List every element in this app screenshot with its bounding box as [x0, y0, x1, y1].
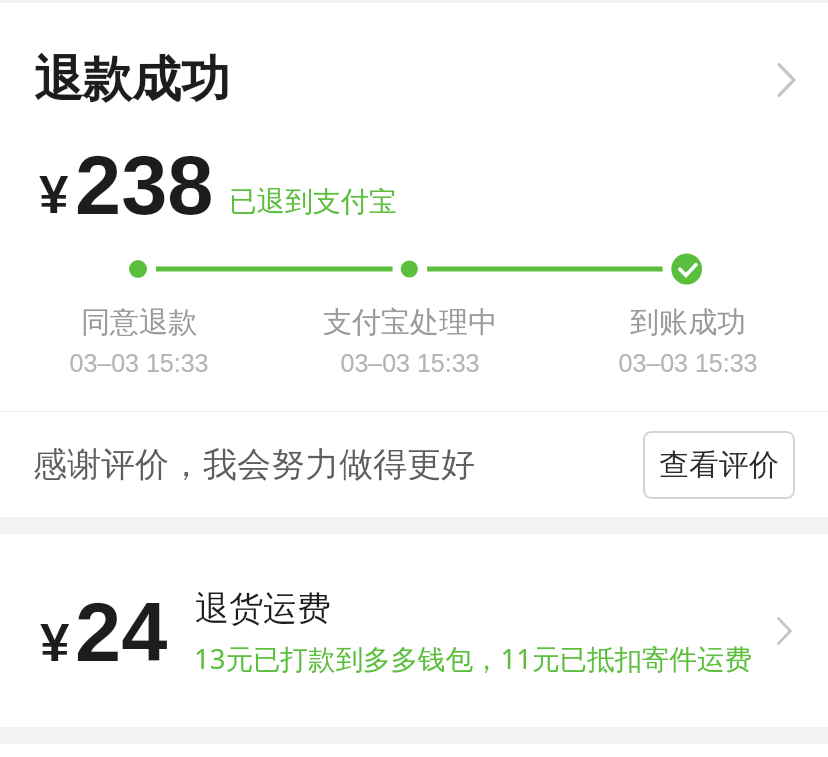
staticText: 查看评价 [659, 446, 779, 484]
button[interactable]: 查看评价 [643, 431, 795, 499]
staticText: ¥ [39, 165, 69, 224]
staticText: 到账成功 [630, 304, 746, 341]
button[interactable]: ¥ [0, 534, 828, 727]
staticText: 同意退款 [81, 304, 197, 341]
staticText: 感谢评价，我会努力做得更好 [33, 443, 475, 486]
other: Shipping fee details [776, 617, 792, 645]
staticText: ¥ [40, 613, 70, 672]
staticText: 退款成功 [34, 49, 230, 111]
staticText: 退货运费 [195, 587, 331, 630]
button[interactable]: 感谢评价，我会努力做得更好 [0, 412, 828, 517]
button[interactable]: 退款成功 [0, 0, 828, 128]
staticText: 03–03 15:33 [69, 349, 209, 377]
staticText: 03–03 15:33 [340, 349, 480, 377]
staticText: 03–03 15:33 [618, 349, 758, 377]
staticText: 已退到支付宝 [229, 184, 397, 219]
staticText: 238 [75, 139, 214, 232]
staticText: 13元已打款到多多钱包，11元已抵扣寄件运费 [194, 640, 752, 678]
staticText: 24 [75, 586, 168, 679]
staticText: 支付宝处理中 [323, 304, 497, 341]
other: Refund details [776, 63, 796, 97]
